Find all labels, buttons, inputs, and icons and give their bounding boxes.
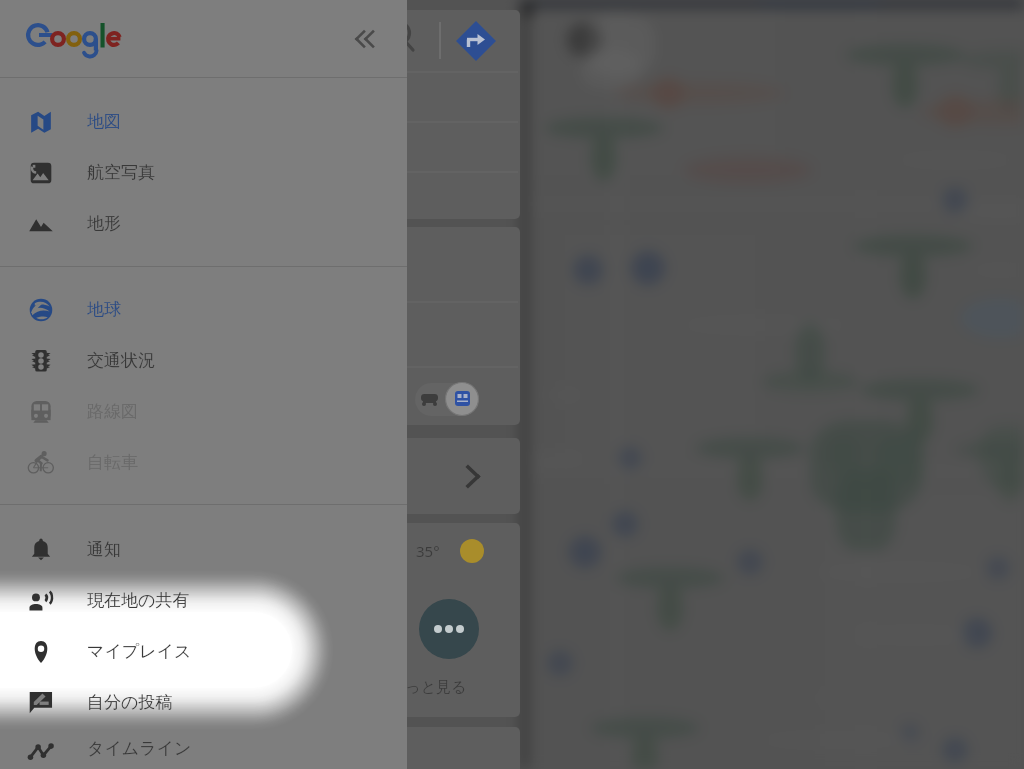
staticText: 交通状況 [87, 350, 155, 371]
button[interactable]: 地図 [0, 96, 407, 147]
button[interactable]: 路線図 [0, 386, 407, 437]
button[interactable]: 自転車 [0, 437, 407, 488]
button[interactable]: タイムライン [0, 728, 407, 769]
staticText: マイプレイス [87, 641, 192, 662]
staticText: 路線図 [87, 401, 138, 422]
staticText: 地球 [87, 299, 121, 320]
staticText: 自分の投稿 [87, 692, 173, 713]
button[interactable]: 現在地の共有 [0, 575, 407, 626]
staticText: タイムライン [87, 738, 192, 759]
staticText: 自転車 [87, 452, 138, 473]
button[interactable]: 自分の投稿 [0, 677, 407, 728]
staticText: 35° [416, 541, 440, 561]
button[interactable]: 通知 [0, 524, 407, 575]
staticText: 地形 [87, 213, 121, 234]
staticText: 現在地の共有 [87, 590, 190, 611]
button[interactable]: 地形 [0, 198, 407, 249]
staticText: 地図 [87, 111, 121, 132]
staticText: 航空写真 [87, 162, 155, 183]
staticText: もっと見る [390, 678, 467, 697]
button[interactable]: 地球 [0, 284, 407, 335]
staticText: 通知 [87, 539, 121, 560]
button[interactable]: マイプレイス [0, 626, 407, 677]
button[interactable]: Collapse drawer [343, 17, 387, 61]
button[interactable]: 交通状況 [0, 335, 407, 386]
button[interactable]: 航空写真 [0, 147, 407, 198]
